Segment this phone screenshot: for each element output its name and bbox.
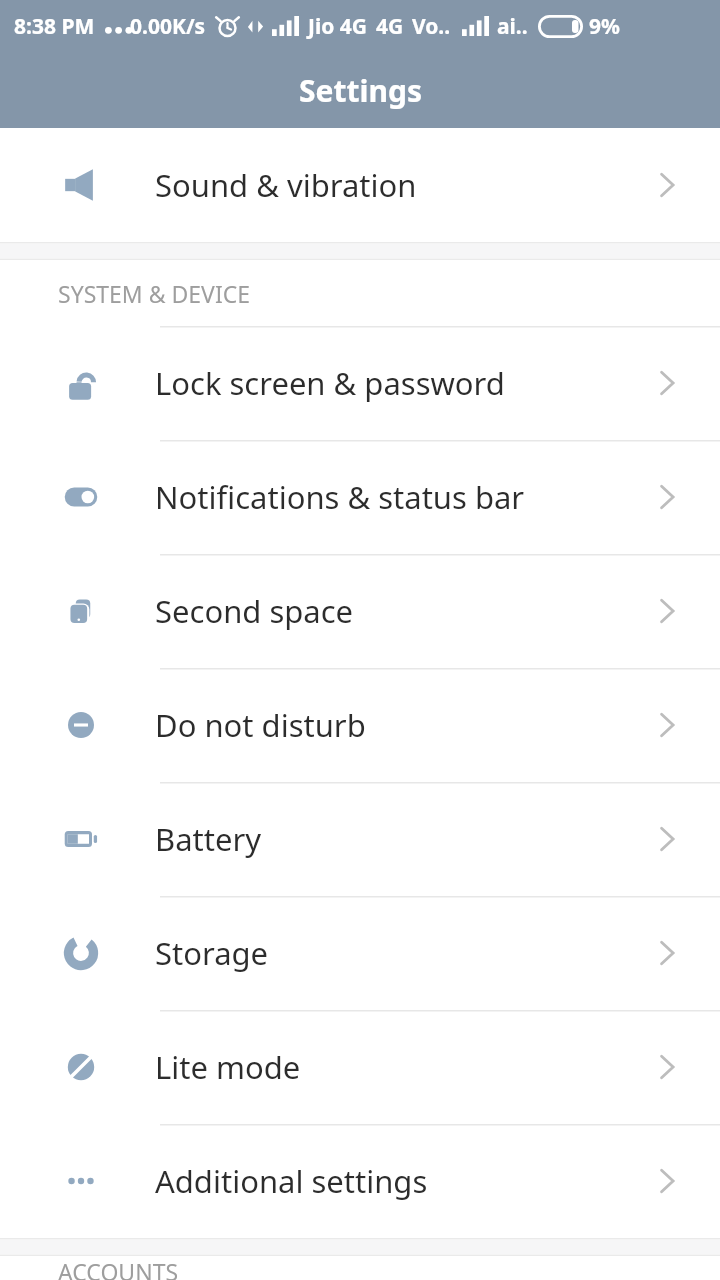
staticText: 8:38 PM bbox=[14, 12, 95, 41]
button[interactable]: Notifications & status bar bbox=[0, 440, 720, 554]
staticText: Notifications & status bar bbox=[155, 476, 525, 518]
staticText: 9% bbox=[589, 12, 620, 41]
staticText: Sound & vibration bbox=[155, 164, 417, 206]
staticText: Second space bbox=[155, 590, 354, 632]
button[interactable]: Storage bbox=[0, 896, 720, 1010]
staticText: ACCOUNTS bbox=[58, 1256, 179, 1280]
button[interactable]: Battery bbox=[0, 782, 720, 896]
staticText: SYSTEM & DEVICE bbox=[58, 278, 251, 309]
staticText: Jio 4G bbox=[308, 12, 368, 41]
staticText: Battery bbox=[155, 818, 262, 860]
staticText: Additional settings bbox=[155, 1160, 428, 1202]
button[interactable]: Additional settings bbox=[0, 1124, 720, 1238]
button[interactable]: Do not disturb bbox=[0, 668, 720, 782]
staticText: Lock screen & password bbox=[155, 362, 505, 404]
staticText: ai.. bbox=[497, 12, 528, 41]
button[interactable]: Lite mode bbox=[0, 1010, 720, 1124]
button[interactable]: Lock screen & password bbox=[0, 326, 720, 440]
staticText: Storage bbox=[155, 932, 269, 974]
staticText: Do not disturb bbox=[155, 704, 366, 746]
staticText: Settings bbox=[299, 70, 422, 111]
staticText: Vo.. bbox=[412, 12, 451, 41]
staticText: 0.00K/s bbox=[130, 12, 206, 41]
button[interactable]: Sound & vibration bbox=[0, 128, 720, 242]
staticText: 4G bbox=[376, 12, 404, 41]
button[interactable]: Second space bbox=[0, 554, 720, 668]
staticText: Lite mode bbox=[155, 1046, 301, 1088]
